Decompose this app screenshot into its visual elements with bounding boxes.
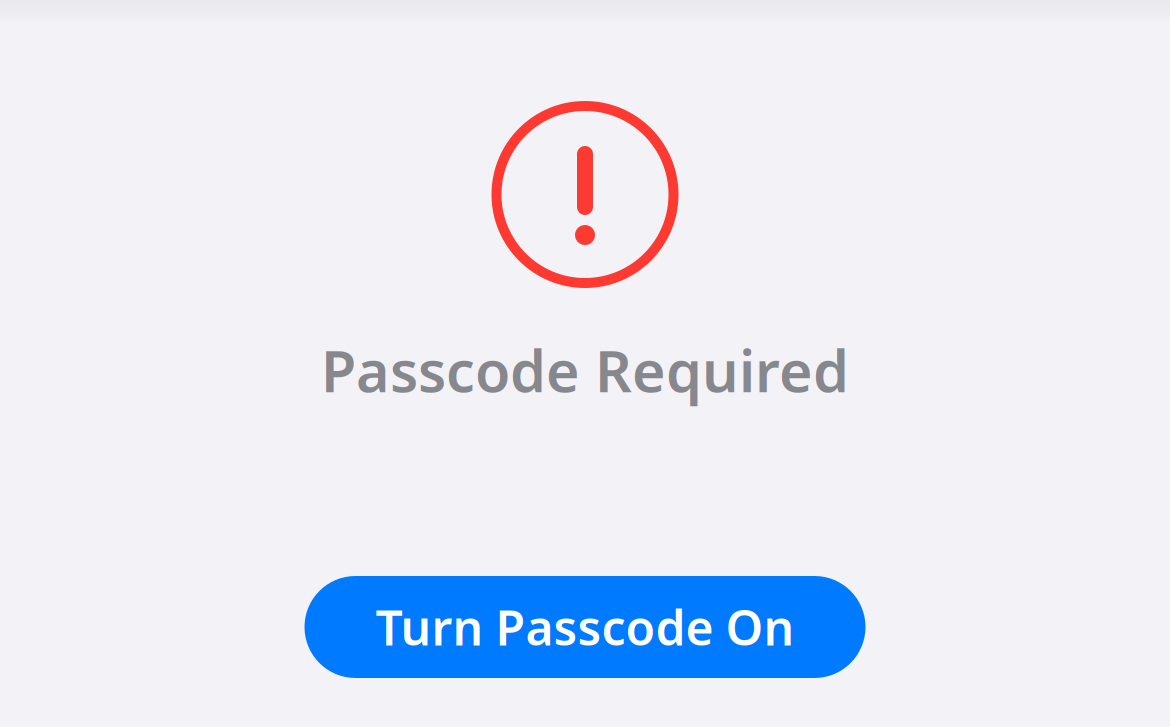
staticText: Passcode Required (321, 332, 849, 408)
button[interactable]: Turn Passcode On (304, 576, 865, 678)
staticText: Turn Passcode On (375, 595, 794, 659)
